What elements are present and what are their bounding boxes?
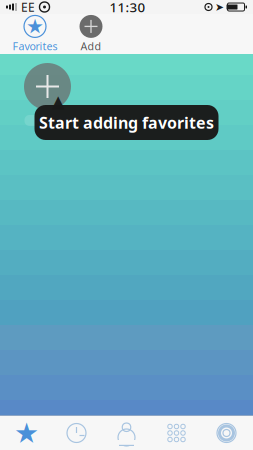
staticText: Add <box>80 39 101 53</box>
staticText: EE <box>21 0 35 15</box>
button[interactable]: Add <box>68 15 114 53</box>
button[interactable]: Contacts <box>101 416 151 450</box>
button[interactable]: ★ <box>8 15 62 53</box>
staticText: ➤ <box>215 1 224 13</box>
staticText: 11:30 <box>109 0 145 16</box>
staticText: Start adding favorites <box>39 112 214 133</box>
button[interactable]: Add favorite <box>24 63 71 110</box>
button[interactable]: Settings <box>201 416 251 450</box>
button[interactable]: Favorites <box>1 416 51 450</box>
button[interactable]: Recents <box>51 416 101 450</box>
staticText: ▲ <box>51 92 64 111</box>
staticText: ★ <box>26 15 44 38</box>
staticText: ★ <box>14 417 39 449</box>
staticText: Favorites <box>12 39 57 53</box>
button[interactable]: Keypad <box>151 416 201 450</box>
